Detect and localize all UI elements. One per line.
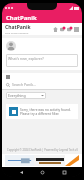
button[interactable] [6,41,16,51]
button[interactable]: Search Panik... [6,80,78,89]
button[interactable]: Everything [8,92,44,99]
staticText: Sorry, there was no activity found. Plea… [20,108,75,116]
button[interactable]: Recents [61,169,67,175]
button[interactable]: What's new, explorer? [8,54,76,67]
staticText: Free Social Network [5,31,29,34]
button[interactable] [5,155,79,166]
button[interactable]: Home [53,27,58,32]
button[interactable]: ChatPanik [5,23,79,35]
button[interactable]: Back [18,169,24,175]
staticText: Search Panik... [12,82,36,87]
button[interactable]: Sorry, there was no activity found. Plea… [9,107,75,116]
staticText: ChatPanik [6,14,37,22]
button[interactable]: Feed [6,75,11,80]
button[interactable]: Home [39,169,45,175]
button[interactable]: Notifications [67,27,72,32]
staticText: Everything [8,93,41,98]
button[interactable]: ChatPanik [2,12,82,23]
staticText: What's new, explorer? [8,56,44,61]
staticText: ChatPanik [5,24,31,31]
staticText: Copyright © 2024 ChatPanik | Powered by … [7,148,78,152]
button[interactable]: Messages [60,27,65,32]
